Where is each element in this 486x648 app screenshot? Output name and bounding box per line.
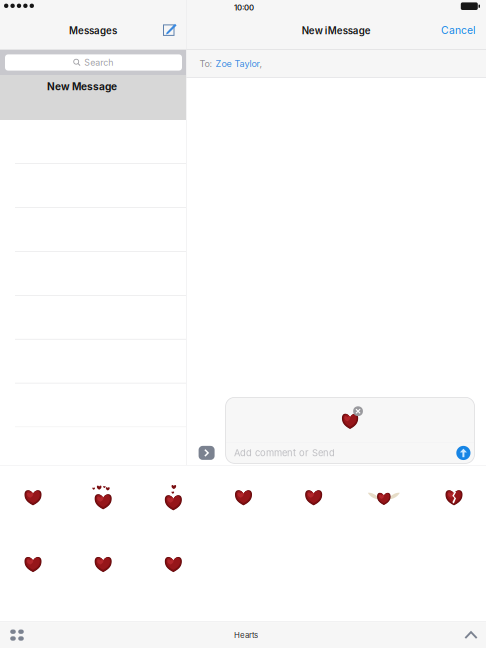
- staticText: 10:00: [234, 3, 254, 12]
- button[interactable]: Expand: [458, 623, 484, 648]
- staticText: Search: [84, 57, 113, 68]
- button[interactable]: Broken heart sticker: [437, 483, 471, 513]
- button[interactable]: Red heart sticker: [86, 549, 120, 579]
- button[interactable]: Apps: [4, 623, 30, 648]
- staticText: Cancel: [441, 24, 476, 36]
- button[interactable]: Sparkling heart sticker: [86, 483, 120, 513]
- button[interactable]: App drawer: [199, 446, 215, 460]
- button[interactable]: Red heart sticker: [16, 549, 50, 579]
- staticText: Messages: [69, 25, 117, 36]
- button[interactable]: Red heart sticker: [156, 549, 190, 579]
- button[interactable]: Send: [456, 446, 470, 460]
- button[interactable]: Growing heart sticker: [156, 483, 190, 513]
- staticText: New iMessage: [302, 25, 371, 36]
- staticText: ,: [260, 58, 263, 69]
- button[interactable]: Red heart sticker: [16, 483, 50, 513]
- button[interactable]: Search: [0, 54, 186, 71]
- button[interactable]: Heart with arrow sticker: [367, 483, 401, 513]
- button[interactable]: Red heart sticker: [297, 483, 331, 513]
- button[interactable]: Red heart sticker: [226, 483, 260, 513]
- staticText: To:: [200, 58, 216, 69]
- staticText: Zoe Taylor: [216, 58, 260, 69]
- button[interactable]: Cancel: [436, 21, 481, 39]
- staticText: Hearts: [234, 630, 258, 640]
- staticText: Add comment or Send: [234, 447, 335, 459]
- button[interactable]: New Message: [157, 16, 183, 42]
- staticText: New Message: [47, 80, 117, 93]
- button[interactable]: New Message: [0, 75, 186, 120]
